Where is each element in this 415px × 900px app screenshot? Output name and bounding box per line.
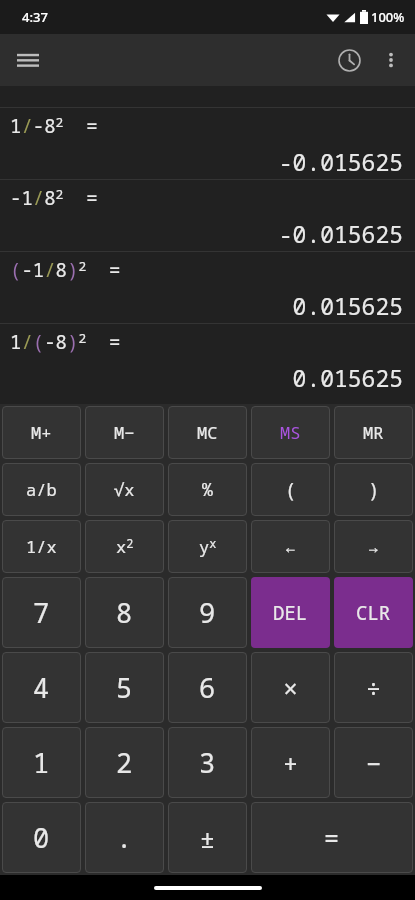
button[interactable]: Divide: [334, 652, 413, 723]
button[interactable]: √x: [85, 463, 164, 516]
button[interactable]: 9: [168, 577, 247, 648]
staticText: →: [368, 534, 379, 559]
button[interactable]: .: [85, 802, 164, 873]
staticText: −: [366, 746, 382, 780]
button[interactable]: Minus: [334, 727, 413, 798]
staticText: 4: [33, 669, 50, 706]
staticText: (: [285, 477, 297, 503]
button[interactable]: Equals: [251, 802, 413, 873]
button[interactable]: 1/-82 =: [0, 108, 415, 179]
button[interactable]: M−: [85, 406, 164, 459]
staticText: .: [116, 819, 133, 856]
button[interactable]: MS: [251, 406, 330, 459]
staticText: yx: [199, 535, 217, 558]
button[interactable]: %: [168, 463, 247, 516]
staticText: MS: [280, 421, 301, 444]
staticText: a/b: [26, 478, 57, 501]
staticText: 2: [116, 744, 133, 781]
button[interactable]: M+: [2, 406, 81, 459]
staticText: ←: [285, 534, 296, 559]
staticText: 8: [116, 594, 133, 631]
button[interactable]: History: [327, 38, 371, 82]
button[interactable]: 0: [2, 802, 81, 873]
staticText: 1/(-8)2 =: [10, 329, 121, 355]
staticText: 0.015625: [292, 290, 403, 321]
button[interactable]: 6: [168, 652, 247, 723]
staticText: =: [324, 821, 340, 855]
button[interactable]: 4: [2, 652, 81, 723]
staticText: 1: [33, 744, 50, 781]
button[interactable]: a/b: [2, 463, 81, 516]
staticText: 0.015625: [292, 362, 403, 393]
button[interactable]: 5: [85, 652, 164, 723]
staticText: 4:37: [22, 8, 48, 26]
staticText: DEL: [273, 600, 308, 626]
staticText: 1/-82 =: [10, 113, 98, 139]
staticText: 100%: [371, 8, 405, 26]
staticText: MR: [363, 421, 384, 444]
staticText: 3: [199, 744, 216, 781]
staticText: 7: [33, 594, 50, 631]
staticText: 1/x: [26, 535, 57, 558]
staticText: +: [283, 746, 299, 780]
staticText: 5: [116, 669, 133, 706]
button[interactable]: Menu: [6, 38, 50, 82]
staticText: √x: [114, 478, 135, 501]
staticText: MC: [197, 421, 218, 444]
button[interactable]: 1/(-8)2 =: [0, 324, 415, 395]
staticText: M−: [114, 421, 135, 444]
button[interactable]: Multiply: [251, 652, 330, 723]
staticText: CLR: [356, 600, 391, 626]
staticText: 6: [199, 669, 216, 706]
staticText: -1/82 =: [10, 185, 98, 211]
button[interactable]: x2: [85, 520, 164, 573]
button[interactable]: (: [251, 463, 330, 516]
staticText: -0.015625: [278, 146, 403, 177]
staticText: (-1/8)2 =: [10, 257, 121, 283]
staticText: ): [368, 477, 380, 503]
staticText: 0: [33, 819, 50, 856]
button[interactable]: Negate: [168, 802, 247, 873]
button[interactable]: 1/x: [2, 520, 81, 573]
staticText: -0.015625: [278, 218, 403, 249]
button[interactable]: -1/82 =: [0, 180, 415, 251]
button[interactable]: 2: [85, 727, 164, 798]
staticText: %: [202, 477, 213, 502]
button[interactable]: Move right: [334, 520, 413, 573]
button[interactable]: (-1/8)2 =: [0, 252, 415, 323]
staticText: x2: [116, 535, 134, 558]
button[interactable]: 7: [2, 577, 81, 648]
button[interactable]: CLR: [334, 577, 413, 648]
staticText: ±: [200, 821, 216, 855]
button[interactable]: Plus: [251, 727, 330, 798]
staticText: M+: [31, 421, 52, 444]
button[interactable]: 1: [2, 727, 81, 798]
staticText: ÷: [366, 671, 382, 705]
button[interactable]: 8: [85, 577, 164, 648]
button[interactable]: MC: [168, 406, 247, 459]
staticText: 9: [199, 594, 216, 631]
button[interactable]: 3: [168, 727, 247, 798]
button[interactable]: DEL: [251, 577, 330, 648]
button[interactable]: More options: [371, 40, 411, 80]
button[interactable]: yx: [168, 520, 247, 573]
button[interactable]: MR: [334, 406, 413, 459]
button[interactable]: Move left: [251, 520, 330, 573]
staticText: ×: [283, 671, 299, 705]
button[interactable]: ): [334, 463, 413, 516]
